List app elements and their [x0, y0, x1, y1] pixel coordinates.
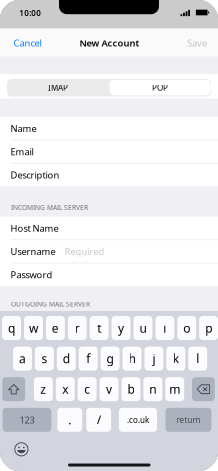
- button[interactable]: return: [165, 408, 211, 432]
- staticText: .co.uk: [127, 414, 149, 425]
- button[interactable]: a: [13, 347, 32, 371]
- staticText: 10:00: [19, 7, 41, 18]
- staticText: g: [107, 351, 114, 366]
- staticText: u: [139, 320, 146, 336]
- button[interactable]: f: [79, 347, 98, 371]
- button[interactable]: m: [165, 377, 184, 401]
- staticText: v: [106, 381, 112, 397]
- button[interactable]: p: [199, 316, 218, 340]
- staticText: /: [97, 412, 101, 428]
- button[interactable]: e: [46, 316, 65, 340]
- staticText: 123: [19, 414, 34, 426]
- button[interactable]: s: [35, 347, 54, 371]
- button[interactable]: q: [2, 316, 21, 340]
- button[interactable]: Shift: [2, 377, 25, 401]
- button[interactable]: k: [166, 347, 185, 371]
- staticText: Description: [10, 169, 59, 181]
- staticText: z: [40, 381, 46, 397]
- staticText: d: [63, 351, 70, 366]
- staticText: k: [173, 351, 179, 366]
- staticText: n: [149, 381, 156, 397]
- button[interactable]: /: [86, 408, 111, 432]
- staticText: x: [62, 381, 68, 397]
- button[interactable]: IMAP: [7, 79, 108, 96]
- staticText: Required: [64, 245, 104, 258]
- staticText: Email: [10, 145, 33, 158]
- button[interactable]: x: [56, 377, 75, 401]
- button[interactable]: Host Name: [0, 217, 218, 240]
- staticText: w: [29, 320, 38, 336]
- button[interactable]: o: [177, 316, 196, 340]
- button[interactable]: Password: [0, 263, 218, 286]
- button[interactable]: u: [133, 316, 152, 340]
- staticText: Username: [10, 245, 55, 258]
- staticText: s: [41, 351, 47, 366]
- staticText: i: [163, 320, 166, 336]
- button[interactable]: Cancel: [5, 30, 49, 56]
- button[interactable]: .: [57, 408, 82, 432]
- staticText: POP: [152, 82, 168, 93]
- button[interactable]: Name: [0, 117, 218, 140]
- button[interactable]: v: [100, 377, 118, 401]
- staticText: Cancel: [13, 37, 41, 49]
- staticText: p: [205, 320, 212, 336]
- button[interactable]: Delete: [192, 377, 215, 401]
- staticText: New Account: [79, 37, 139, 49]
- button[interactable]: i: [155, 316, 174, 340]
- button[interactable]: POP: [109, 80, 210, 95]
- staticText: m: [169, 381, 180, 397]
- staticText: return: [176, 414, 200, 425]
- staticText: IMAP: [48, 82, 68, 93]
- button[interactable]: r: [68, 316, 87, 340]
- staticText: e: [52, 320, 59, 336]
- button[interactable]: w: [24, 316, 43, 340]
- button[interactable]: 123: [3, 408, 51, 432]
- button[interactable]: g: [101, 347, 119, 371]
- button[interactable]: t: [90, 316, 109, 340]
- button[interactable]: l: [188, 347, 207, 371]
- staticText: f: [86, 351, 90, 366]
- button[interactable]: z: [34, 377, 53, 401]
- button[interactable]: Save: [177, 30, 217, 56]
- staticText: o: [183, 320, 190, 336]
- staticText: r: [75, 320, 80, 336]
- staticText: y: [118, 320, 124, 336]
- staticText: l: [196, 351, 199, 366]
- button[interactable]: .co.uk: [119, 408, 157, 432]
- button[interactable]: Username: [0, 240, 218, 263]
- button[interactable]: d: [57, 347, 76, 371]
- button[interactable]: h: [122, 347, 141, 371]
- staticText: b: [127, 381, 134, 397]
- staticText: INCOMING MAIL SERVER: [11, 203, 88, 212]
- staticText: h: [128, 351, 135, 366]
- staticText: .: [68, 412, 71, 428]
- button[interactable]: b: [121, 377, 140, 401]
- staticText: q: [8, 320, 15, 336]
- button[interactable]: y: [112, 316, 130, 340]
- button[interactable]: j: [144, 347, 163, 371]
- button[interactable]: Emoji keyboard: [12, 440, 30, 458]
- button[interactable]: n: [143, 377, 162, 401]
- button[interactable]: c: [78, 377, 97, 401]
- staticText: t: [97, 320, 101, 336]
- staticText: a: [19, 351, 26, 366]
- staticText: Host Name: [10, 222, 58, 234]
- staticText: Name: [10, 122, 36, 135]
- staticText: Save: [187, 37, 207, 49]
- staticText: c: [84, 381, 90, 397]
- staticText: Password: [10, 268, 52, 281]
- staticText: OUTGOING MAIL SERVER: [11, 300, 90, 308]
- staticText: j: [152, 351, 155, 366]
- button[interactable]: Email: [0, 140, 218, 163]
- button[interactable]: Description: [0, 163, 218, 186]
